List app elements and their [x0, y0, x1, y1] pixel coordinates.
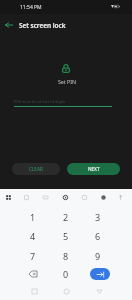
button[interactable]: 2 [49, 207, 83, 226]
button[interactable]: Recents [26, 283, 42, 299]
staticText: 6 [95, 230, 101, 242]
button[interactable]: Settings [58, 190, 72, 204]
staticText: 1 [30, 211, 36, 223]
button[interactable]: 5 [49, 226, 83, 245]
button[interactable]: Backspace [16, 264, 50, 283]
button[interactable]: NEXT [67, 163, 120, 175]
staticText: 5 [63, 230, 69, 242]
button[interactable]: 0 [49, 264, 83, 283]
button[interactable]: 8 [49, 246, 83, 265]
staticText: 2 [63, 211, 69, 223]
button[interactable]: 7 [16, 246, 50, 265]
button[interactable]: 3 [81, 207, 115, 226]
staticText: NEXT [88, 166, 100, 172]
staticText: 0 [63, 268, 69, 280]
button[interactable]: GIF [38, 190, 52, 204]
staticText: 11:54 PM [20, 4, 42, 11]
button[interactable]: Clipboard [19, 190, 33, 204]
staticText: CLEAR [29, 166, 43, 172]
button[interactable]: 4 [16, 226, 50, 245]
staticText: PIN must be at least 4 digits [14, 99, 66, 104]
staticText: 9 [95, 250, 101, 262]
staticText: 8 [63, 250, 69, 262]
button[interactable]: Apps [1, 190, 15, 204]
staticText: Set PIN [1, 78, 132, 85]
button[interactable]: Back [91, 283, 107, 299]
button[interactable]: 1 [16, 207, 50, 226]
staticText: 3 [95, 211, 101, 223]
button[interactable]: 6 [81, 226, 115, 245]
button[interactable]: Enter [90, 268, 110, 280]
staticText: 7 [30, 250, 36, 262]
button[interactable]: Emoji [96, 190, 110, 204]
button[interactable]: CLEAR [12, 163, 60, 175]
button[interactable]: Home [58, 283, 74, 299]
button[interactable]: 9 [81, 246, 115, 265]
button[interactable]: Sticker [77, 190, 91, 204]
staticText: Set screen lock [19, 21, 66, 30]
button[interactable]: Back [0, 15, 18, 34]
button[interactable]: Voice input [113, 190, 127, 204]
staticText: 4 [30, 230, 36, 242]
